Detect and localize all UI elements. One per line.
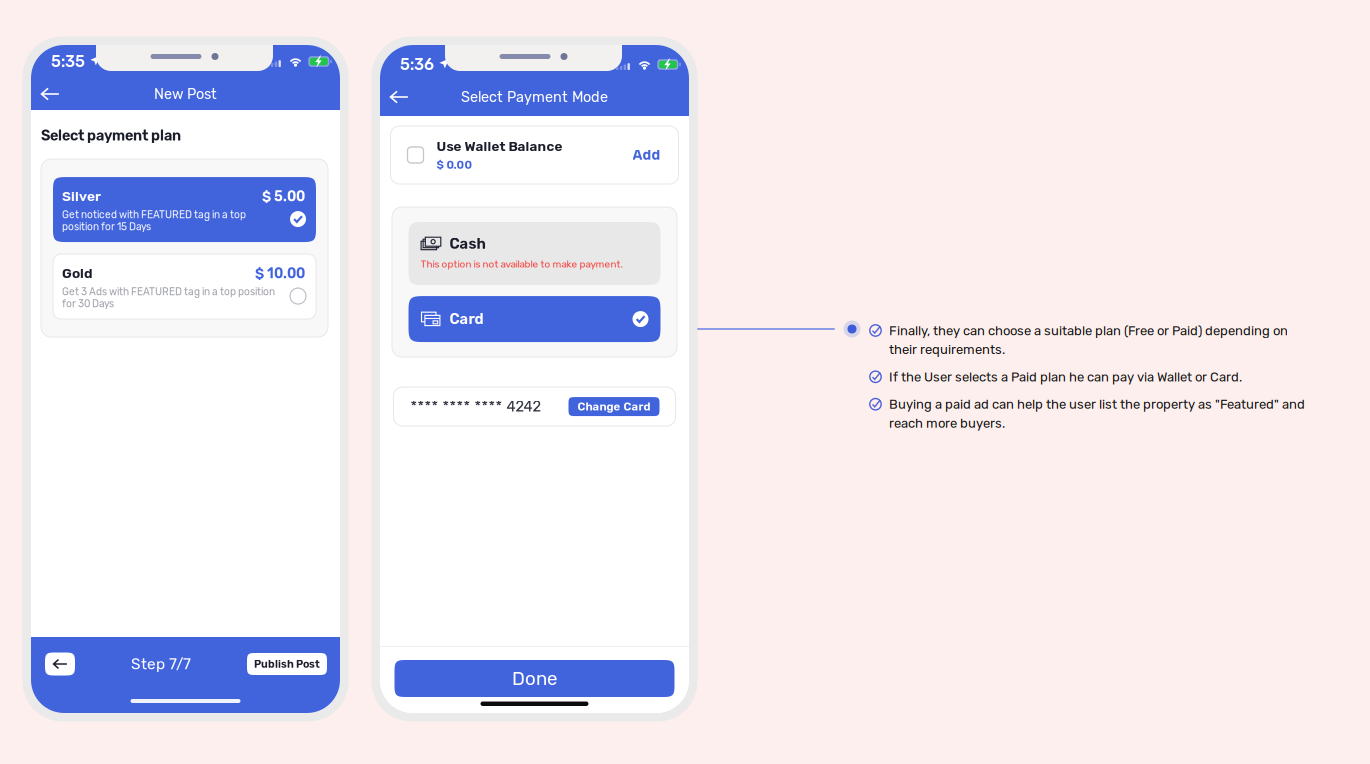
staticText: **** **** **** 4242 (410, 398, 541, 415)
button[interactable]: Gold (53, 254, 316, 319)
button[interactable]: Back (31, 79, 69, 109)
staticText: Silver (62, 188, 101, 204)
staticText: This option is not available to make pay… (420, 258, 622, 270)
staticText: Buying a paid ad can help the user list … (889, 397, 1305, 412)
staticText: Step 7/7 (131, 655, 191, 673)
staticText: Done (512, 667, 557, 689)
staticText: Change Card (577, 400, 650, 413)
staticText: Finally, they can choose a suitable plan… (889, 323, 1288, 338)
staticText: Get 3 Ads with FEATURED tag in a top pos… (62, 286, 275, 310)
staticText: Select Payment Mode (461, 88, 608, 106)
staticText: $ 0.00 (436, 158, 472, 172)
staticText: Cash (449, 235, 485, 252)
staticText: their requirements. (889, 342, 1005, 357)
staticText: Add (632, 147, 660, 163)
staticText: 5:35 (51, 52, 85, 71)
button[interactable]: Silver (53, 177, 316, 242)
staticText: reach more buyers. (889, 416, 1005, 431)
button[interactable]: Back (45, 652, 75, 675)
staticText: Select payment plan (41, 127, 181, 144)
staticText: Card (449, 310, 483, 328)
button[interactable]: Publish Post (247, 653, 327, 675)
button[interactable]: Use Wallet Balance (390, 126, 678, 184)
button[interactable]: Change Card (568, 397, 659, 416)
button[interactable]: Card (408, 296, 660, 342)
staticText: $ 10.00 (255, 265, 305, 282)
staticText: Publish Post (254, 658, 320, 670)
staticText: Gold (62, 265, 93, 281)
staticText: New Post (154, 85, 217, 103)
staticText: If the User selects a Paid plan he can p… (889, 369, 1242, 385)
button[interactable]: Done (394, 660, 674, 697)
staticText: Get noticed with FEATURED tag in a top p… (62, 209, 246, 233)
button[interactable]: Back (380, 82, 418, 112)
staticText: 5:36 (400, 55, 434, 74)
staticText: $ 5.00 (262, 188, 305, 205)
staticText: Use Wallet Balance (436, 138, 562, 154)
